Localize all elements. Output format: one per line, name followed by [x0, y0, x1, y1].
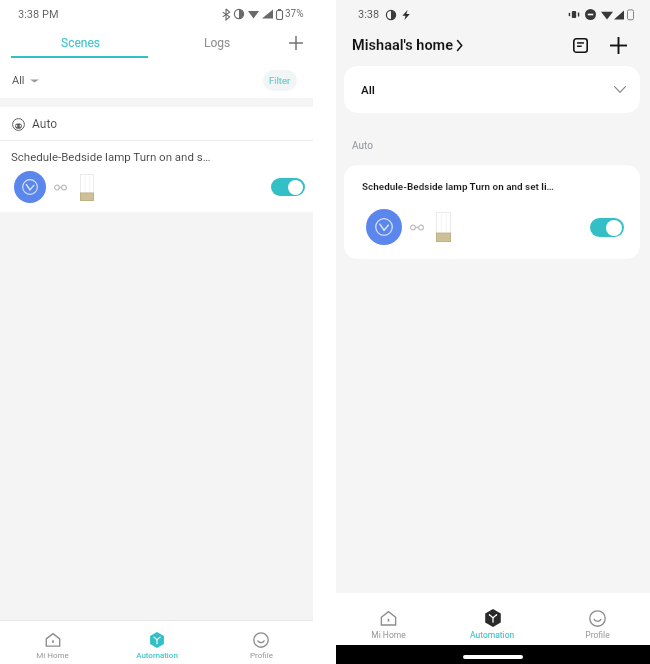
button[interactable]: Toggle automation — [271, 178, 305, 196]
staticText: Schedule-Bedside lamp Turn on and s… — [11, 150, 211, 163]
button[interactable]: Profile — [209, 628, 313, 663]
button[interactable]: Mi Home — [0, 628, 105, 663]
button[interactable]: Scenes — [0, 28, 160, 58]
button[interactable]: Automation — [105, 628, 209, 663]
staticText: 3:38 — [358, 8, 380, 21]
button[interactable]: Mishaal's home — [352, 37, 463, 54]
staticText: Profile — [250, 651, 273, 660]
button[interactable]: Toggle automation — [590, 218, 624, 237]
button[interactable]: Add — [279, 28, 313, 58]
staticText: Mishaal's home — [352, 37, 454, 54]
staticText: Profile — [585, 630, 610, 640]
staticText: All — [12, 74, 25, 87]
staticText: Mi Home — [36, 651, 69, 660]
button[interactable]: Logs — [567, 32, 593, 58]
staticText: Logs — [204, 36, 231, 50]
button[interactable]: Auto — [0, 107, 313, 141]
staticText: Mi Home — [371, 630, 406, 640]
staticText: Auto — [32, 117, 58, 131]
button[interactable]: Mi Home — [336, 605, 440, 644]
staticText: Schedule-Bedside lamp Turn on and set li… — [362, 181, 554, 193]
staticText: Filter — [269, 75, 291, 86]
staticText: Automation — [136, 651, 178, 660]
button[interactable]: All — [12, 74, 39, 87]
button[interactable]: Schedule-Bedside lamp Turn on and set li… — [344, 165, 640, 259]
button[interactable]: Add — [605, 32, 631, 58]
button[interactable]: All — [344, 66, 640, 113]
staticText: Scenes — [61, 36, 100, 50]
staticText: 3:38 PM — [18, 8, 59, 21]
staticText: 37% — [285, 8, 304, 20]
button[interactable]: Schedule-Bedside lamp Turn on and s… — [0, 141, 313, 212]
button[interactable]: Automation — [440, 605, 545, 644]
button[interactable]: Profile — [545, 605, 650, 644]
button[interactable]: Filter — [263, 70, 297, 91]
staticText: All — [361, 83, 375, 96]
staticText: Auto — [352, 140, 373, 152]
button[interactable]: Logs — [160, 28, 275, 58]
staticText: Automation — [470, 630, 515, 640]
